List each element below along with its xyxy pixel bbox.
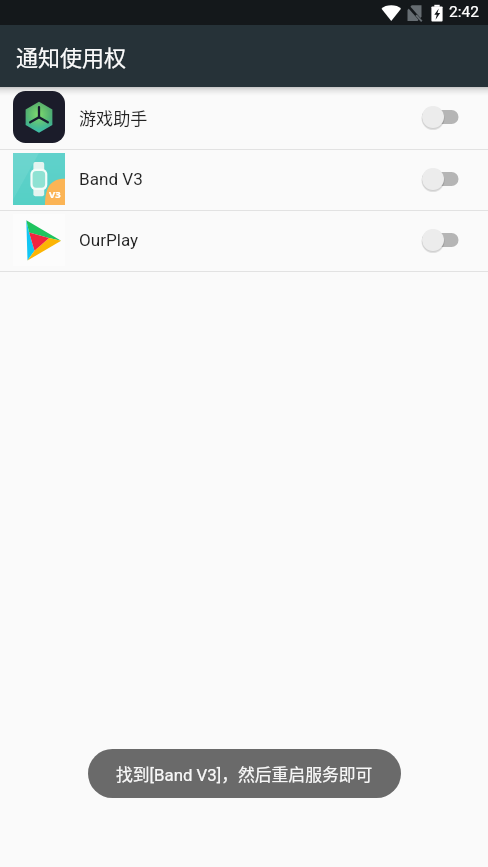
staticText: 游戏助手 (79, 105, 148, 130)
staticText: 通知使用权 (16, 40, 127, 72)
button[interactable]: Toggle notification access (421, 103, 459, 131)
staticText: OurPlay (79, 230, 139, 250)
staticText: Band V3 (79, 169, 143, 189)
staticText: 2:42 (449, 3, 479, 21)
button[interactable]: OurPlay (0, 210, 488, 270)
button[interactable]: Toggle notification access (421, 226, 459, 254)
button[interactable]: V3 (0, 149, 488, 209)
button[interactable]: 游戏助手 (0, 87, 488, 147)
button[interactable]: Toggle notification access (421, 165, 459, 193)
staticText: 找到[Band V3]，然后重启服务即可 (116, 762, 373, 786)
staticText: V3 (49, 188, 61, 201)
